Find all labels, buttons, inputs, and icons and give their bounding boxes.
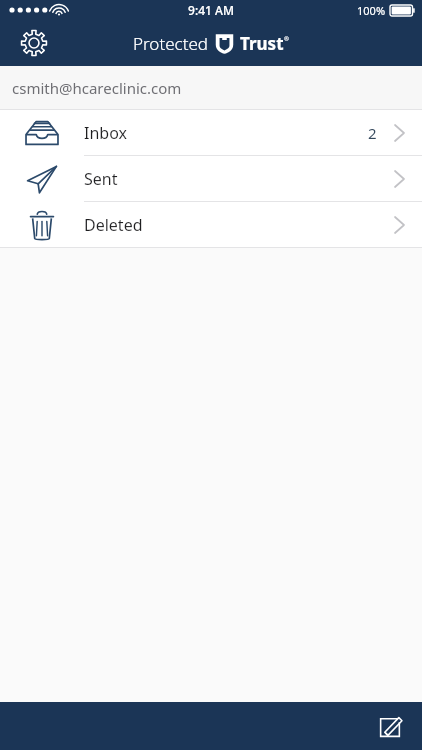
- staticText: ®: [284, 35, 289, 43]
- staticText: Sent: [84, 168, 118, 190]
- staticText: 100%: [357, 3, 386, 18]
- button[interactable]: Settings: [14, 23, 54, 63]
- button[interactable]: Sent: [0, 156, 422, 201]
- staticText: Protected: [133, 32, 209, 55]
- button[interactable]: Inbox: [0, 110, 422, 155]
- button[interactable]: Deleted: [0, 202, 422, 247]
- button[interactable]: Compose: [368, 704, 412, 748]
- staticText: Deleted: [84, 214, 143, 236]
- staticText: Trust: [240, 32, 284, 55]
- staticText: 2: [368, 123, 377, 143]
- staticText: csmith@hcareclinic.com: [12, 78, 182, 98]
- staticText: 9:41 AM: [188, 2, 234, 18]
- staticText: Inbox: [84, 122, 127, 144]
